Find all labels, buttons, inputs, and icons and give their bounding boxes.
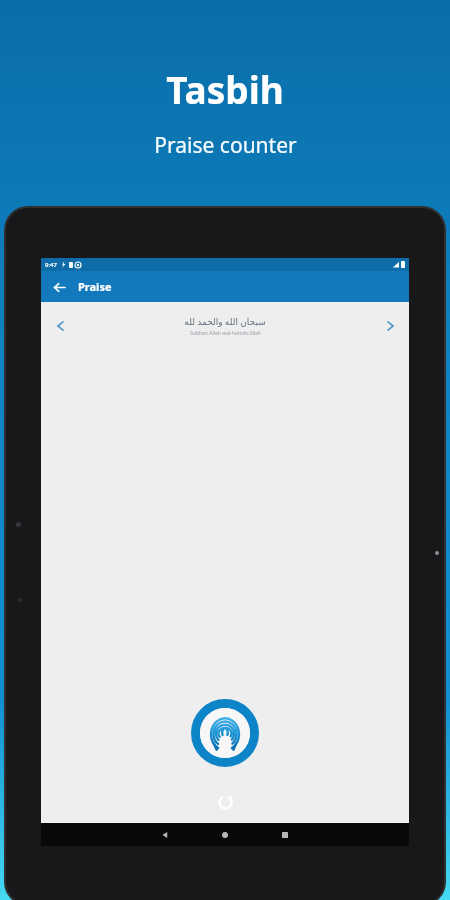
staticText: Praise — [78, 279, 112, 294]
staticText: 9:47 — [45, 261, 57, 269]
staticText: Tasbih — [166, 64, 284, 114]
button[interactable]: Home — [207, 823, 243, 846]
button[interactable]: Reset counter — [212, 789, 238, 815]
button[interactable]: Next praise — [371, 302, 409, 349]
button[interactable]: Recent apps — [267, 823, 303, 846]
button[interactable]: Count praise — [191, 699, 259, 767]
staticText: Subhan Allah wal-hamdu lillah — [190, 330, 261, 337]
staticText: Praise counter — [154, 131, 297, 160]
button[interactable]: Previous praise — [41, 302, 79, 349]
button[interactable]: Navigate up — [48, 276, 70, 298]
staticText: سبحان الله والحمد لله — [184, 315, 266, 327]
button[interactable]: Back — [147, 823, 183, 846]
